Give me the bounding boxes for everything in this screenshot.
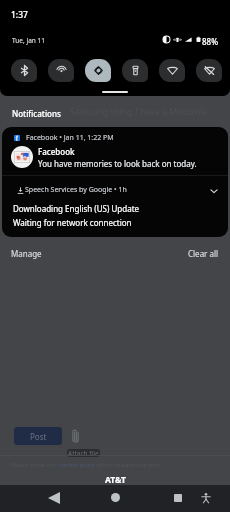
- button[interactable]: Data saver: [196, 59, 222, 82]
- button[interactable]: Notifications: [12, 108, 61, 119]
- staticText: 1:37: [11, 9, 28, 21]
- button[interactable]: Clear all: [188, 248, 219, 259]
- button[interactable]: Post: [14, 427, 62, 445]
- button[interactable]: Recent apps: [166, 486, 189, 509]
- staticText: Attach file: [68, 449, 99, 457]
- button[interactable]: Facebook • Jan 11, 1:22 PM: [2, 127, 228, 175]
- button[interactable]: Back: [42, 486, 65, 509]
- button[interactable]: Wi-Fi: [159, 59, 185, 82]
- button[interactable]: Flashlight: [122, 59, 148, 82]
- staticText: Manage: [11, 248, 42, 259]
- staticText: Facebook • Jan 11, 1:22 PM: [26, 133, 114, 143]
- staticText: content policy: [58, 461, 95, 469]
- staticText: Downloading English (US) Update: [13, 203, 140, 214]
- staticText: Clear all: [188, 248, 219, 259]
- staticText: 88%: [202, 36, 218, 47]
- staticText: AT&T: [105, 474, 126, 485]
- staticText: Waiting for network connection: [13, 217, 132, 228]
- button[interactable]: Accessibility: [194, 486, 217, 509]
- button[interactable]: Hotspot: [48, 59, 74, 82]
- button[interactable]: Manage: [11, 248, 42, 259]
- staticText: Speech Services by Google • 1h: [25, 185, 127, 195]
- button[interactable]: Auto rotate: [85, 59, 111, 82]
- button[interactable]: Expand: [207, 184, 221, 198]
- button[interactable]: Home: [104, 486, 127, 509]
- button[interactable]: Bluetooth: [11, 59, 37, 82]
- staticText: Facebook: [38, 146, 75, 157]
- staticText: Post: [30, 431, 47, 442]
- button[interactable]: Speech Services by Google • 1h: [2, 176, 228, 237]
- staticText: You have memories to look back on today.: [38, 158, 197, 169]
- button[interactable]: Attach file: [70, 429, 81, 443]
- staticText: Tue, Jan 11: [12, 36, 45, 45]
